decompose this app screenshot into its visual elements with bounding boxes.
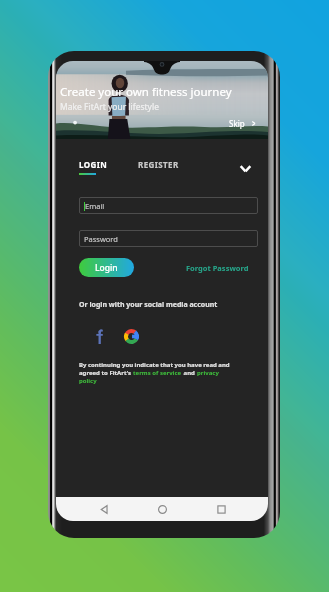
button[interactable]: Password bbox=[79, 230, 258, 247]
button[interactable]: Sign in with Google bbox=[122, 327, 140, 345]
staticText: By continuing you indicate that you have… bbox=[79, 361, 230, 369]
button[interactable]: policy bbox=[79, 377, 97, 385]
staticText: Email bbox=[85, 201, 105, 211]
staticText: agreed to FitArt's bbox=[79, 369, 133, 377]
button[interactable]: Expand bbox=[237, 160, 253, 176]
button[interactable]: REGISTER bbox=[138, 159, 179, 170]
button[interactable]: privacy bbox=[197, 369, 219, 377]
button[interactable]: Email bbox=[79, 197, 258, 214]
staticText: Password bbox=[84, 234, 118, 244]
staticText: Login bbox=[95, 262, 118, 274]
button[interactable]: Forgot Password bbox=[186, 263, 258, 273]
button[interactable]: Sign in with Facebook bbox=[90, 327, 108, 345]
button[interactable]: LOGIN bbox=[79, 159, 108, 175]
button[interactable]: Back bbox=[93, 498, 115, 520]
staticText: Create your own fitness journey bbox=[60, 84, 232, 100]
staticText: LOGIN bbox=[79, 159, 108, 170]
button[interactable]: Recent apps bbox=[210, 498, 232, 520]
button[interactable]: terms of service bbox=[133, 369, 182, 377]
button[interactable]: Skip bbox=[229, 118, 257, 129]
staticText: Skip bbox=[229, 118, 245, 129]
staticText: Or login with your social media account bbox=[79, 300, 218, 310]
button[interactable]: Home bbox=[151, 498, 173, 520]
staticText: and bbox=[182, 369, 197, 377]
button[interactable]: Login bbox=[79, 258, 134, 277]
staticText: Make FitArt your lifestyle bbox=[60, 101, 159, 113]
